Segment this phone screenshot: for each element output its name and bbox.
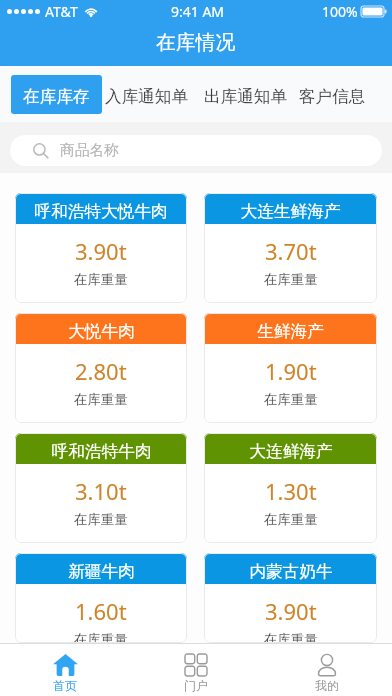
staticText: 在库重量 bbox=[264, 391, 318, 408]
button[interactable]: 门户 bbox=[130, 644, 261, 696]
staticText: 1.90t bbox=[265, 356, 317, 386]
button[interactable]: 商品名称 bbox=[10, 135, 382, 166]
staticText: 客户信息 bbox=[299, 86, 366, 107]
button[interactable]: 首页 bbox=[0, 644, 130, 696]
staticText: 在库重量 bbox=[74, 511, 128, 528]
button[interactable]: 生鲜海产 bbox=[204, 313, 377, 423]
button[interactable]: 客户信息 bbox=[297, 75, 368, 114]
staticText: 1.30t bbox=[265, 476, 317, 506]
button[interactable]: 大连鲜海产 bbox=[204, 433, 377, 543]
staticText: 1.60t bbox=[75, 596, 127, 626]
staticText: 在库重量 bbox=[74, 631, 128, 643]
staticText: 在库库存 bbox=[23, 86, 90, 107]
staticText: 9:41 AM bbox=[171, 2, 225, 21]
staticText: 在库重量 bbox=[264, 271, 318, 288]
staticText: 首页 bbox=[53, 678, 77, 693]
staticText: 100% bbox=[322, 2, 358, 21]
staticText: 3.90t bbox=[265, 596, 317, 626]
staticText: 3.70t bbox=[265, 236, 317, 266]
staticText: 在库重量 bbox=[74, 271, 128, 288]
staticText: 在库重量 bbox=[74, 391, 128, 408]
staticText: 内蒙古奶牛 bbox=[249, 561, 333, 582]
button[interactable]: 呼和浩特牛肉 bbox=[15, 433, 187, 543]
staticText: 入库通知单 bbox=[105, 86, 188, 107]
staticText: 大连生鲜海产 bbox=[240, 201, 341, 222]
staticText: 商品名称 bbox=[60, 141, 119, 160]
button[interactable]: 在库库存 bbox=[11, 75, 102, 114]
staticText: 在库重量 bbox=[264, 511, 318, 528]
staticText: 呼和浩特牛肉 bbox=[51, 441, 152, 462]
staticText: 出库通知单 bbox=[204, 86, 287, 107]
staticText: 2.80t bbox=[75, 356, 127, 386]
button[interactable]: 呼和浩特大悦牛肉 bbox=[15, 193, 187, 303]
staticText: 大悦牛肉 bbox=[68, 321, 135, 342]
button[interactable]: 大悦牛肉 bbox=[15, 313, 187, 423]
staticText: 门户 bbox=[184, 678, 208, 693]
staticText: 3.90t bbox=[75, 236, 127, 266]
button[interactable]: 新疆牛肉 bbox=[15, 553, 187, 643]
button[interactable]: 大连生鲜海产 bbox=[204, 193, 377, 303]
staticText: 新疆牛肉 bbox=[68, 561, 135, 582]
staticText: AT&T bbox=[45, 2, 78, 21]
button[interactable]: 出库通知单 bbox=[202, 75, 289, 114]
staticText: 呼和浩特大悦牛肉 bbox=[34, 201, 168, 222]
button[interactable]: 入库通知单 bbox=[103, 75, 190, 114]
staticText: 在库重量 bbox=[264, 631, 318, 643]
staticText: 大连鲜海产 bbox=[249, 441, 333, 462]
staticText: 我的 bbox=[315, 678, 339, 693]
button[interactable]: 我的 bbox=[261, 644, 392, 696]
staticText: 生鲜海产 bbox=[257, 321, 324, 342]
staticText: 3.10t bbox=[75, 476, 127, 506]
button[interactable]: 内蒙古奶牛 bbox=[204, 553, 377, 643]
staticText: 在库情况 bbox=[156, 30, 236, 55]
